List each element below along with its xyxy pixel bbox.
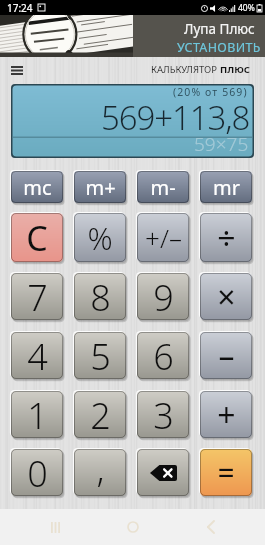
staticText: 17:24 [7, 1, 33, 15]
button[interactable]: mr [200, 171, 252, 203]
staticText: 2 [90, 391, 111, 438]
button[interactable]: 3 [137, 391, 189, 438]
button[interactable]: 4 [11, 332, 63, 379]
button[interactable]: m+ [74, 171, 126, 203]
button[interactable]: Recent apps [33, 509, 77, 545]
staticText: + [217, 393, 236, 437]
staticText: × [217, 275, 236, 319]
staticText: m+ [85, 174, 116, 201]
staticText: 0 [27, 449, 48, 496]
button[interactable]: 7 [11, 273, 63, 320]
staticText: % [87, 217, 113, 259]
button[interactable]: m- [137, 171, 189, 203]
staticText: 6 [153, 332, 174, 379]
staticText: КАЛЬКУЛЯТОР [151, 63, 218, 76]
staticText: mr [213, 174, 240, 201]
staticText: +/– [145, 220, 182, 255]
button[interactable]: 1 [11, 391, 63, 438]
staticText: Лупа Плюс [184, 20, 255, 38]
button[interactable]: ÷ [200, 213, 252, 262]
button[interactable]: + [200, 391, 252, 438]
button[interactable]: Home [111, 509, 155, 545]
button[interactable]: 0 [11, 449, 63, 496]
button[interactable]: mc [11, 171, 63, 203]
button[interactable]: Menu [4, 57, 30, 83]
button[interactable]: УСТАНОВИТЬ [177, 39, 261, 56]
staticText: 59×75 [194, 131, 249, 157]
button[interactable]: 9 [137, 273, 189, 320]
staticText: 8 [90, 273, 111, 320]
staticText: 7 [27, 273, 48, 320]
button[interactable]: , [74, 449, 126, 496]
button[interactable]: Back [188, 509, 232, 545]
staticText: = [217, 452, 235, 493]
staticText: – [218, 334, 235, 378]
button[interactable]: Backspace [137, 449, 189, 496]
button[interactable]: +/– [137, 213, 189, 262]
staticText: 1 [27, 391, 48, 438]
staticText: ПЛЮС [220, 63, 250, 76]
button[interactable]: % [74, 213, 126, 262]
button[interactable]: = [200, 449, 252, 496]
staticText: 5 [90, 332, 111, 379]
staticText: 4 [27, 332, 48, 379]
staticText: 3 [153, 391, 174, 438]
staticText: 569+113,8 [101, 95, 250, 140]
button[interactable]: 8 [74, 273, 126, 320]
button[interactable]: C [11, 213, 63, 262]
staticText: (20% от 569) [173, 85, 248, 99]
staticText: C [26, 215, 48, 261]
button[interactable]: 5 [74, 332, 126, 379]
staticText: ÷ [217, 216, 236, 260]
button[interactable]: 2 [74, 391, 126, 438]
staticText: mc [23, 174, 52, 201]
staticText: 40% [238, 2, 255, 14]
staticText: m- [150, 174, 176, 201]
button[interactable]: – [200, 332, 252, 379]
button[interactable]: × [200, 273, 252, 320]
staticText: , [96, 444, 105, 491]
button[interactable]: КАЛЬКУЛЯТОР [151, 63, 248, 76]
staticText: 9 [153, 273, 174, 320]
button[interactable]: 6 [137, 332, 189, 379]
